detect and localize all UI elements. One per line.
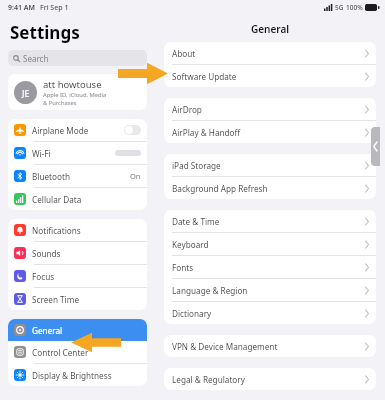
- button[interactable]: AirDrop: [164, 98, 376, 120]
- button[interactable]: Keyboard: [164, 233, 376, 255]
- staticText: att howtouse: [43, 78, 102, 91]
- staticText: Language & Region: [172, 285, 365, 296]
- staticText: About: [172, 48, 365, 59]
- staticText: Settings: [10, 21, 80, 44]
- staticText: General: [32, 325, 141, 336]
- staticText: Control Center: [32, 347, 141, 358]
- staticText: 9:41 AM: [8, 3, 35, 13]
- staticText: Notifications: [32, 225, 141, 236]
- button[interactable]: Sounds: [8, 242, 147, 264]
- button[interactable]: Bluetooth: [8, 165, 147, 187]
- staticText: Display & Brightness: [32, 370, 141, 381]
- staticText: Search: [23, 53, 49, 64]
- button[interactable]: Notifications: [8, 219, 147, 241]
- button[interactable]: iPad Storage: [164, 154, 376, 176]
- staticText: Airplane Mode: [32, 125, 124, 136]
- button[interactable]: Background App Refresh: [164, 177, 376, 199]
- staticText: Focus: [32, 271, 141, 282]
- button[interactable]: Screen Time: [8, 288, 147, 310]
- button[interactable]: AirPlay & Handoff: [164, 121, 376, 143]
- staticText: iPad Storage: [172, 160, 365, 171]
- staticText: Wi-Fi: [32, 148, 115, 159]
- staticText: Date & Time: [172, 216, 365, 227]
- button[interactable]: About: [164, 42, 376, 64]
- staticText: Screen Time: [32, 294, 141, 305]
- button[interactable]: Wi-Fi: [8, 142, 147, 164]
- staticText: JE: [22, 87, 30, 99]
- button[interactable]: Legal & Regulatory: [164, 368, 376, 390]
- staticText: AirDrop: [172, 104, 365, 115]
- staticText: 5G: [335, 3, 344, 12]
- staticText: On: [130, 171, 141, 181]
- button[interactable]: Display & Brightness: [8, 364, 147, 386]
- button[interactable]: Search: [8, 50, 147, 66]
- button[interactable]: VPN & Device Management: [164, 335, 376, 357]
- button[interactable]: JE: [8, 74, 147, 110]
- staticText: & Purchases: [43, 99, 77, 107]
- button[interactable]: Control Center: [8, 341, 147, 363]
- staticText: Bluetooth: [32, 171, 130, 182]
- staticText: 100%: [346, 3, 363, 12]
- staticText: Sounds: [32, 248, 141, 259]
- staticText: Software Update: [172, 71, 365, 82]
- staticText: Dictionary: [172, 308, 365, 319]
- button[interactable]: General: [8, 319, 147, 341]
- staticText: General: [251, 22, 290, 36]
- button[interactable]: Collapse sidebar: [371, 127, 380, 166]
- staticText: Keyboard: [172, 239, 365, 250]
- button[interactable]: Dictionary: [164, 302, 376, 324]
- button[interactable]: Language & Region: [164, 279, 376, 301]
- button[interactable]: Cellular Data: [8, 188, 147, 210]
- button[interactable]: Software Update: [164, 65, 376, 87]
- staticText: AirPlay & Handoff: [172, 127, 365, 138]
- staticText: Legal & Regulatory: [172, 374, 365, 385]
- staticText: Fri Sep 1: [40, 3, 69, 13]
- staticText: Fonts: [172, 262, 365, 273]
- staticText: Cellular Data: [32, 194, 141, 205]
- button[interactable]: Airplane Mode: [8, 119, 147, 141]
- staticText: Apple ID, iCloud, Media: [43, 91, 107, 99]
- staticText: Background App Refresh: [172, 183, 365, 194]
- button[interactable]: Date & Time: [164, 210, 376, 232]
- button[interactable]: Fonts: [164, 256, 376, 278]
- staticText: VPN & Device Management: [172, 341, 365, 352]
- button[interactable]: Focus: [8, 265, 147, 287]
